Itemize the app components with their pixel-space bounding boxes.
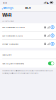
staticText: Wi-Fi xyxy=(25,6,31,10)
staticText: My Network 2.4 GHz xyxy=(2,26,25,29)
button[interactable]: ‹ xyxy=(1,4,13,11)
staticText: ‹ xyxy=(2,5,3,11)
button[interactable]: Other Network xyxy=(0,40,56,48)
button[interactable]: My Network 5 GHz xyxy=(0,31,56,39)
staticText: Other Network xyxy=(2,42,18,45)
staticText: Wi-Fi xyxy=(2,12,11,18)
button[interactable]: Network info xyxy=(51,25,54,29)
staticText: ◣ xyxy=(47,1,49,4)
staticText: i xyxy=(52,42,53,46)
staticText: My Network 5 GHz xyxy=(2,34,23,37)
button[interactable]: Ask to Join Networks xyxy=(0,59,56,68)
staticText: i xyxy=(52,34,53,37)
button[interactable]: Toggle xyxy=(48,62,54,65)
staticText: Known networks will be joined automatica… xyxy=(2,69,53,74)
staticText: Auto-Join xyxy=(2,53,11,56)
button[interactable]: My Network 2.4 GHz xyxy=(0,23,56,31)
staticText: Settings xyxy=(3,6,13,10)
staticText: Ask to Join Networks xyxy=(2,62,24,65)
staticText: 9:41 xyxy=(3,1,7,4)
button[interactable]: Network info xyxy=(51,34,54,37)
button[interactable]: Network info xyxy=(51,42,54,45)
staticText: MY NETWORKS xyxy=(2,20,14,22)
button[interactable]: Auto-Join xyxy=(0,50,56,59)
staticText: i xyxy=(52,25,53,29)
